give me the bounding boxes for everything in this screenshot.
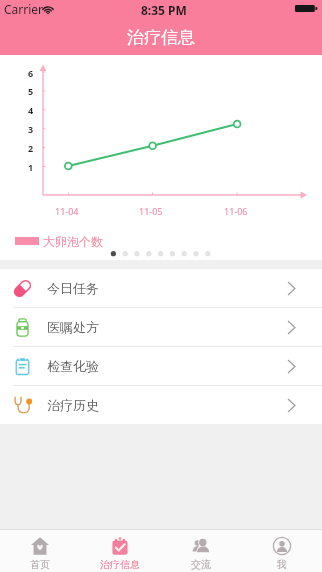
button[interactable]: 首页: [0, 530, 80, 572]
other: Battery: [295, 4, 317, 13]
staticText: 11-04: [55, 205, 79, 217]
staticText: 首页: [30, 558, 50, 571]
staticText: 8:35 PM: [141, 2, 187, 18]
button[interactable]: 交流: [160, 530, 241, 572]
button[interactable]: 检查化验: [0, 347, 322, 386]
staticText: 治疗历史: [47, 397, 99, 413]
staticText: 11-06: [224, 205, 248, 217]
staticText: 2: [28, 142, 34, 154]
staticText: 3: [28, 123, 34, 135]
other: Wi-Fi: [43, 5, 53, 14]
staticText: 11-05: [139, 205, 163, 217]
button[interactable]: 治疗信息: [80, 530, 160, 572]
staticText: 大卵泡个数: [43, 234, 103, 249]
button[interactable]: 治疗历史: [0, 386, 322, 424]
staticText: 医嘱处方: [47, 319, 99, 335]
button[interactable]: 我: [241, 530, 322, 572]
staticText: 检查化验: [47, 358, 99, 374]
staticText: 1: [28, 161, 34, 173]
staticText: 我: [277, 558, 287, 571]
staticText: 今日任务: [47, 280, 99, 296]
staticText: 5: [28, 85, 34, 97]
button[interactable]: 医嘱处方: [0, 308, 322, 347]
staticText: 治疗信息: [127, 27, 195, 48]
staticText: 交流: [191, 558, 211, 571]
staticText: 6: [28, 67, 34, 79]
button[interactable]: 今日任务: [0, 269, 322, 308]
staticText: 4: [28, 104, 34, 116]
staticText: Carrier: [4, 1, 44, 17]
staticText: 治疗信息: [100, 558, 140, 571]
